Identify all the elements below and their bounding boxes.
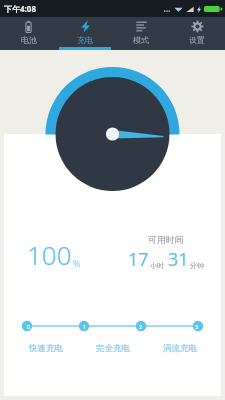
staticText: 2	[139, 323, 143, 330]
button[interactable]: Charging stage 1	[57, 319, 113, 333]
staticText: 涓流充电	[163, 343, 197, 354]
staticText: 3	[195, 323, 199, 330]
button[interactable]: 涓流充电	[146, 343, 213, 354]
staticText: 下午4:08	[4, 3, 36, 14]
button[interactable]: Charging stage 0	[0, 319, 57, 333]
staticText: 小时	[150, 261, 164, 270]
button[interactable]: 电池	[0, 17, 57, 50]
staticText: 设置	[189, 35, 205, 45]
button[interactable]: 模式	[113, 17, 169, 50]
button[interactable]: Charging stage 3	[169, 319, 225, 333]
staticText: 1	[83, 323, 87, 330]
button[interactable]: 设置	[169, 17, 225, 50]
staticText: 100	[27, 237, 72, 272]
staticText: 充电	[77, 35, 93, 45]
staticText: 快速充电	[29, 343, 63, 354]
staticText: 可用时间	[148, 234, 184, 245]
staticText: 模式	[133, 35, 149, 45]
button[interactable]: 完全充电	[79, 343, 146, 354]
staticText: 完全充电	[96, 343, 130, 354]
staticText: 分钟	[190, 261, 204, 270]
staticText: 31	[168, 247, 189, 272]
staticText: %	[73, 257, 81, 269]
button[interactable]: 充电	[57, 17, 113, 50]
staticText: 17	[128, 247, 149, 272]
staticText: 电池	[21, 35, 37, 45]
staticText: 0	[27, 323, 31, 330]
button[interactable]: 快速充电	[12, 343, 79, 354]
button[interactable]: Charging stage 2	[113, 319, 169, 333]
